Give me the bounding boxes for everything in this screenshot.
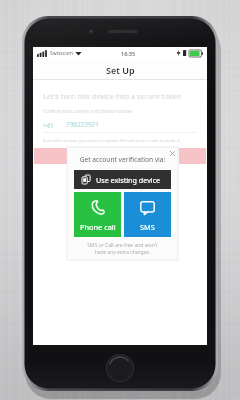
button[interactable]: SMS [124, 192, 171, 237]
button[interactable]: Phone call [74, 192, 121, 237]
staticText: 16:35 [121, 50, 136, 57]
staticText: Get account verification via: [74, 155, 171, 164]
button[interactable]: Close [166, 147, 178, 159]
staticText: SMS or Call are free and won't have any … [74, 242, 171, 256]
staticText: SMS [140, 222, 155, 232]
staticText: Enter the number you want to register. W… [43, 138, 181, 144]
staticText: Set Up [106, 64, 135, 76]
staticText: Confirm your country and phone number [43, 108, 133, 114]
staticText: Let's turn this device into a secure tok… [43, 91, 182, 101]
staticText: 790223971 [66, 120, 99, 129]
staticText: Swisscom [50, 50, 73, 57]
staticText: Phone call [80, 222, 116, 232]
staticText: Use existing device [96, 175, 161, 185]
staticText: +41 [43, 121, 54, 129]
button[interactable]: Use existing device [74, 170, 171, 189]
